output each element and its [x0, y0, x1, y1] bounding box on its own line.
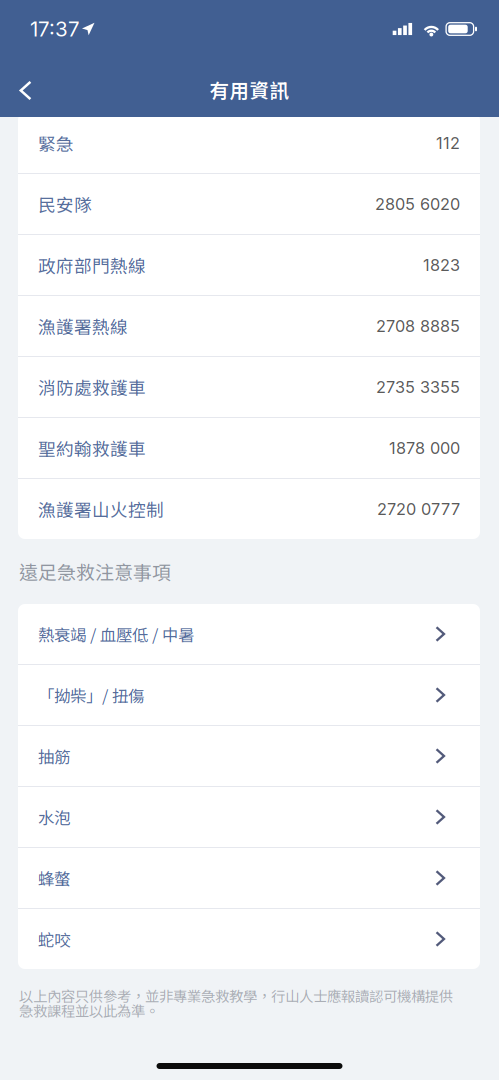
staticText: 政府部門熱線 — [38, 252, 146, 278]
button[interactable]: 「拗柴」/ 扭傷 — [18, 665, 480, 725]
staticText: 2708 8885 — [376, 316, 460, 336]
button[interactable]: 熱衰竭 / 血壓低 / 中暑 — [18, 604, 480, 664]
staticText: 2720 0777 — [377, 499, 460, 519]
staticText: 以上內容只供參考，並非專業急救教學，行山人士應報讀認可機構提供 — [19, 985, 453, 1006]
staticText: 「拗柴」/ 扭傷 — [38, 683, 144, 707]
staticText: 1878 000 — [389, 438, 460, 458]
button[interactable]: 蜂螫 — [18, 848, 480, 908]
button[interactable]: 漁護署山火控制 — [18, 479, 480, 539]
staticText: 有用資訊 — [209, 75, 289, 104]
staticText: 急救課程並以此為準。 — [19, 1000, 159, 1021]
staticText: 遠足急救注意事項 — [19, 558, 171, 585]
button[interactable]: 蛇咬 — [18, 909, 480, 969]
staticText: 抽筋 — [38, 744, 70, 768]
staticText: 蜂螫 — [38, 866, 70, 890]
button[interactable]: 政府部門熱線 — [18, 235, 480, 295]
button[interactable]: 民安隊 — [18, 174, 480, 234]
button[interactable]: 緊急 — [18, 113, 480, 173]
button[interactable]: 消防處救護車 — [18, 357, 480, 417]
staticText: 2735 3355 — [376, 377, 460, 397]
button[interactable]: 水泡 — [18, 787, 480, 847]
button[interactable]: 漁護署熱線 — [18, 296, 480, 356]
staticText: 水泡 — [38, 805, 70, 829]
button[interactable]: 抽筋 — [18, 726, 480, 786]
staticText: 2805 6020 — [375, 194, 460, 214]
staticText: 漁護署山火控制 — [38, 496, 164, 522]
staticText: 聖約翰救護車 — [38, 435, 146, 461]
button[interactable]: Back — [0, 58, 54, 117]
button[interactable]: 聖約翰救護車 — [18, 418, 480, 478]
staticText: 緊急 — [38, 130, 74, 156]
staticText: 漁護署熱線 — [38, 313, 128, 339]
staticText: 消防處救護車 — [38, 374, 146, 400]
staticText: 1823 — [423, 255, 460, 275]
staticText: 民安隊 — [38, 191, 92, 217]
staticText: 蛇咬 — [38, 927, 70, 951]
staticText: 17:37 — [30, 17, 80, 41]
staticText: 112 — [436, 133, 460, 153]
staticText: 熱衰竭 / 血壓低 / 中暑 — [38, 622, 194, 646]
